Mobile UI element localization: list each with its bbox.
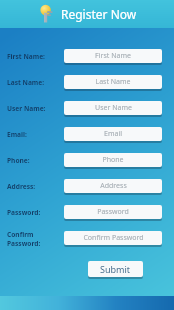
button[interactable]: User Name — [64, 101, 162, 117]
staticText: Register Now — [61, 6, 137, 22]
staticText: User Name: — [7, 104, 46, 113]
staticText: Confirm Password — [83, 233, 144, 243]
button[interactable]: Phone — [64, 153, 162, 169]
other: Register key — [38, 4, 58, 24]
button[interactable]: First Name — [64, 49, 162, 65]
staticText: Phone — [102, 155, 124, 165]
staticText: Password: — [7, 208, 41, 217]
staticText: User Name — [95, 103, 132, 113]
button[interactable]: Last Name — [64, 75, 162, 91]
button[interactable]: Confirm Password — [64, 231, 162, 247]
button[interactable]: Address — [64, 179, 162, 195]
staticText: First Name: — [7, 52, 45, 61]
staticText: Address: — [7, 182, 36, 191]
staticText: First Name — [95, 51, 131, 61]
staticText: Password — [97, 207, 129, 217]
staticText: Email — [104, 129, 122, 139]
button[interactable]: Email — [64, 127, 162, 143]
button[interactable]: Submit — [88, 261, 143, 279]
staticText: Address — [100, 181, 127, 191]
button[interactable]: Password — [64, 205, 162, 221]
staticText: Email: — [7, 130, 27, 139]
staticText: Phone: — [7, 156, 30, 165]
staticText: Last Name — [95, 77, 131, 87]
staticText: Submit — [100, 263, 131, 275]
staticText: Last Name: — [7, 78, 45, 87]
staticText: Confirm Password: — [7, 230, 64, 248]
